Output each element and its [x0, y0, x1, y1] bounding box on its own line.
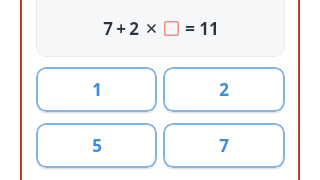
button[interactable]: Answer 2 [163, 67, 285, 112]
button[interactable]: 7 [36, 0, 285, 57]
staticText: 7 [103, 17, 113, 40]
staticText: = [185, 17, 195, 40]
staticText: 1 [92, 78, 102, 101]
staticText: 11 [199, 17, 219, 40]
staticText: + [116, 17, 126, 40]
button[interactable]: Answer 1 [36, 67, 157, 112]
staticText: 2 [219, 78, 229, 101]
staticText: 5 [92, 134, 102, 157]
staticText: 7 [219, 134, 229, 157]
button[interactable]: Answer 5 [36, 123, 157, 168]
staticText: 2 [129, 17, 139, 40]
button[interactable]: Answer 7 [163, 123, 285, 168]
